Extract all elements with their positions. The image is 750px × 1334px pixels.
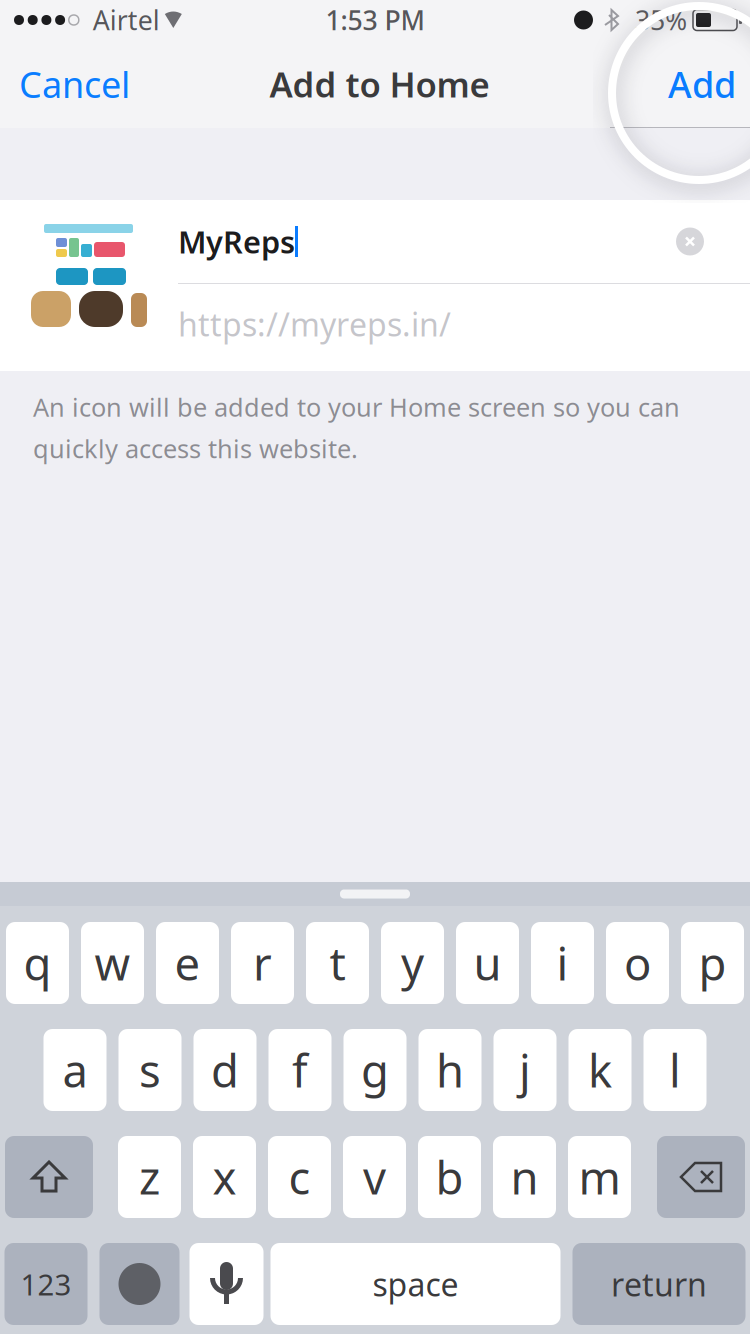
staticText: 123 [20,1264,71,1303]
button[interactable]: t [306,922,369,1004]
staticText: m [578,1147,620,1207]
button[interactable]: d [193,1029,256,1111]
button[interactable]: e [156,922,219,1004]
button[interactable]: l [643,1029,706,1111]
staticText: v [363,1147,386,1207]
button[interactable]: v [343,1136,406,1218]
button[interactable]: Dictate [189,1243,263,1325]
staticText: n [510,1147,538,1207]
button[interactable]: u [456,922,519,1004]
staticText: https://myreps.in/ [178,303,451,345]
button[interactable]: o [606,922,669,1004]
staticText: Cancel [19,60,130,108]
button[interactable]: z [118,1136,181,1218]
button[interactable]: Add [649,40,750,128]
staticText: i [556,933,568,993]
button[interactable]: Clear text [676,227,750,255]
button[interactable]: space [270,1243,560,1325]
staticText: g [361,1040,389,1100]
staticText: q [23,933,51,993]
staticText: MyReps [178,221,295,262]
button[interactable]: return [572,1243,745,1325]
staticText: s [139,1040,161,1100]
button[interactable]: x [193,1136,256,1218]
button[interactable]: Next keyboard [99,1243,179,1325]
button[interactable]: q [6,922,69,1004]
staticText: An icon will be added to your Home scree… [33,390,680,424]
button[interactable]: a [43,1029,106,1111]
staticText: c [288,1147,310,1207]
button[interactable]: 123 [4,1243,87,1325]
staticText: l [669,1040,681,1100]
button[interactable]: Delete [657,1136,745,1218]
staticText: b [435,1147,463,1207]
staticText: j [519,1040,531,1100]
staticText: quickly access this website. [33,432,358,465]
staticText: w [94,933,130,993]
staticText: z [139,1147,160,1207]
button[interactable]: f [268,1029,331,1111]
button[interactable]: s [118,1029,181,1111]
staticText: e [174,933,200,993]
button[interactable]: h [418,1029,481,1111]
button[interactable]: y [381,922,444,1004]
staticText: f [292,1040,308,1100]
staticText: 1:53 PM [325,2,424,38]
staticText: d [211,1040,239,1100]
staticText: Add to Home [269,61,489,107]
staticText: Add [668,60,736,108]
staticText: t [329,933,345,993]
staticText: o [624,933,651,993]
button[interactable]: i [531,922,594,1004]
staticText: x [212,1147,236,1207]
button[interactable]: n [493,1136,556,1218]
staticText: Airtel [93,2,160,38]
button[interactable]: m [568,1136,631,1218]
staticText: return [611,1263,707,1305]
button[interactable]: b [418,1136,481,1218]
staticText: r [253,933,272,993]
staticText: 35% [635,2,687,38]
button[interactable]: Cancel [0,40,149,128]
button[interactable]: w [81,922,144,1004]
button[interactable]: Shift [5,1136,93,1218]
staticText: a [62,1040,87,1100]
staticText: y [401,933,424,993]
staticText: k [588,1040,612,1100]
staticText: p [698,933,726,993]
button[interactable]: p [681,922,744,1004]
staticText: space [372,1263,458,1305]
button[interactable]: j [493,1029,556,1111]
button[interactable]: k [568,1029,631,1111]
button[interactable]: c [268,1136,331,1218]
staticText: h [436,1040,464,1100]
button[interactable]: r [231,922,294,1004]
staticText: u [473,933,501,993]
button[interactable]: g [343,1029,406,1111]
